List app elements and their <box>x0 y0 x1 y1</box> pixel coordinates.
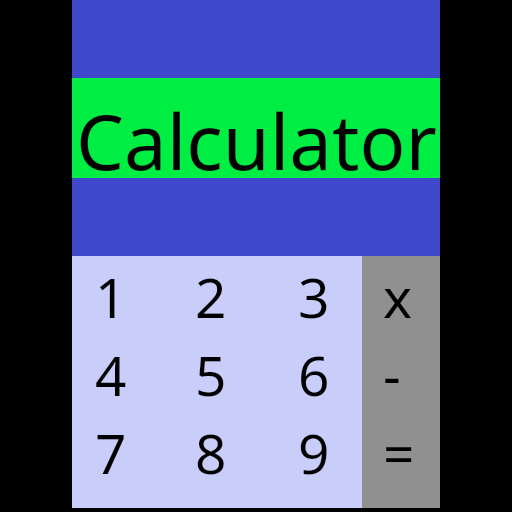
staticText: 3 <box>298 259 330 334</box>
button[interactable]: 3 <box>272 256 362 334</box>
staticText: x <box>383 259 413 334</box>
staticText: 6 <box>298 337 330 412</box>
button[interactable]: 6 <box>272 334 362 412</box>
button[interactable]: - <box>362 334 440 412</box>
button[interactable]: 9 <box>272 412 362 490</box>
button[interactable]: 8 <box>172 412 272 490</box>
button[interactable]: 4 <box>72 334 172 412</box>
button[interactable]: = <box>362 412 440 490</box>
button[interactable]: 7 <box>72 412 172 490</box>
staticText: 8 <box>195 415 227 490</box>
staticText: = <box>383 415 415 490</box>
button[interactable]: 2 <box>172 256 272 334</box>
staticText: 4 <box>95 337 127 412</box>
staticText: 9 <box>298 415 330 490</box>
staticText: - <box>383 337 401 412</box>
staticText: 7 <box>95 415 127 490</box>
button[interactable]: Calculator! <box>72 78 440 178</box>
staticText: Calculator! <box>76 89 444 189</box>
staticText: 2 <box>195 259 227 334</box>
staticText: 1 <box>95 259 127 334</box>
button[interactable]: x <box>362 256 440 334</box>
staticText: 5 <box>195 337 227 412</box>
button[interactable]: 5 <box>172 334 272 412</box>
button[interactable]: 1 <box>72 256 172 334</box>
